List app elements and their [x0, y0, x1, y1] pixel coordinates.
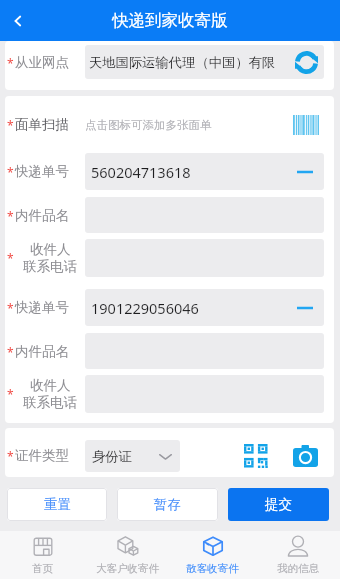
staticText: * [7, 386, 14, 402]
staticText: 证件类型 [15, 447, 69, 464]
button[interactable]: 我的信息 [255, 531, 340, 579]
staticText: 天地国际运输代理（中国）有限 [89, 54, 276, 71]
button[interactable]: 暂存 [117, 488, 218, 521]
staticText: 收件人 [30, 377, 71, 394]
staticText: 面单扫描 [15, 116, 69, 133]
button[interactable]: 重置 [7, 488, 107, 521]
staticText: * [7, 55, 14, 71]
staticText: 内件品名 [15, 343, 69, 360]
staticText: 快递单号 [15, 299, 69, 316]
button[interactable]: Scan waybill [292, 113, 320, 137]
staticText: 身份证 [92, 448, 132, 465]
staticText: * [7, 344, 14, 360]
button[interactable]: 天地国际运输代理（中国）有限 [85, 45, 324, 79]
staticText: * [7, 208, 14, 224]
staticText: 收件人 [30, 241, 71, 258]
staticText: 散客收寄件 [186, 562, 239, 575]
button[interactable]: Back [0, 3, 36, 39]
staticText: 我的信息 [277, 562, 319, 575]
staticText: 1901229056046 [91, 298, 199, 318]
button[interactable]: 散客收寄件 [170, 531, 255, 579]
button[interactable]: 首页 [0, 531, 85, 579]
staticText: 提交 [265, 496, 292, 513]
staticText: 点击图标可添加多张面单 [85, 118, 212, 132]
staticText: 大客户收寄件 [96, 562, 159, 575]
staticText: 560204713618 [91, 162, 191, 182]
staticText: * [7, 164, 14, 180]
staticText: * [7, 448, 14, 464]
button[interactable]: Take photo [292, 439, 319, 473]
button[interactable]: Refresh [295, 51, 318, 74]
button[interactable]: 提交 [228, 488, 329, 521]
button[interactable]: 身份证 [85, 440, 180, 472]
button[interactable]: Remove waybill [295, 298, 315, 318]
staticText: 快递单号 [15, 163, 69, 180]
button[interactable]: 大客户收寄件 [85, 531, 170, 579]
staticText: 快递到家收寄版 [112, 10, 228, 31]
button[interactable]: 560204713618 [85, 153, 324, 190]
staticText: 内件品名 [15, 207, 69, 224]
staticText: * [7, 250, 14, 266]
staticText: 暂存 [154, 496, 181, 513]
staticText: 从业网点 [15, 54, 69, 71]
button[interactable]: 1901229056046 [85, 289, 324, 326]
button[interactable]: Scan QR code [241, 439, 271, 473]
staticText: 首页 [32, 562, 53, 575]
staticText: * [7, 300, 14, 316]
staticText: 重置 [44, 496, 71, 513]
button[interactable]: Remove waybill [295, 162, 315, 182]
staticText: * [7, 117, 14, 133]
staticText: 联系电话 [23, 258, 77, 275]
staticText: 联系电话 [23, 394, 77, 411]
